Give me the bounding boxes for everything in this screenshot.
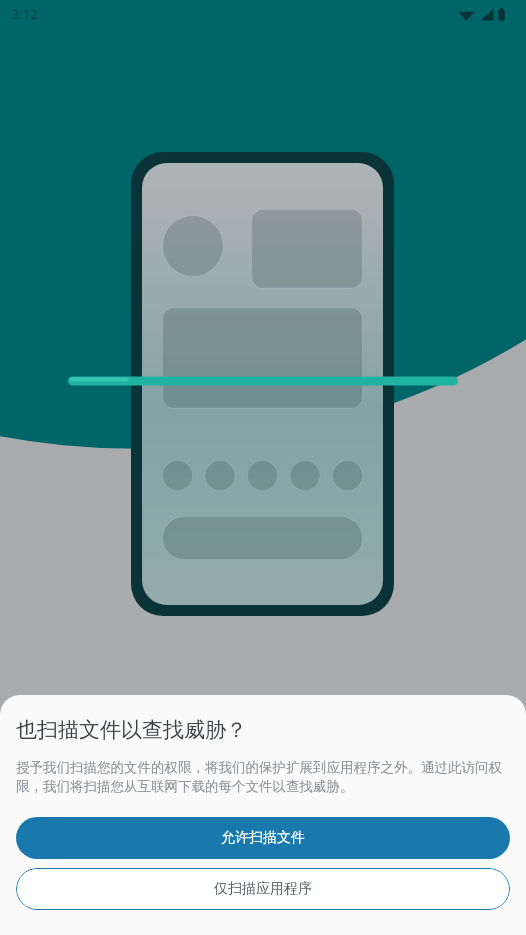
other: 962.NET watermark xyxy=(384,869,520,931)
staticText: 3:12 xyxy=(12,5,38,23)
staticText: 仅扫描应用程序 xyxy=(214,880,312,898)
staticText: 也扫描文件以查找威胁？ xyxy=(16,717,247,743)
button[interactable]: 允许扫描文件 xyxy=(16,817,510,859)
staticText: 允许扫描文件 xyxy=(221,829,305,847)
button[interactable]: 仅扫描应用程序 xyxy=(16,868,510,910)
staticText: 授予我们扫描您的文件的权限，将我们的保护扩展到应用程序之外。通过此访问权限，我们… xyxy=(16,759,510,795)
